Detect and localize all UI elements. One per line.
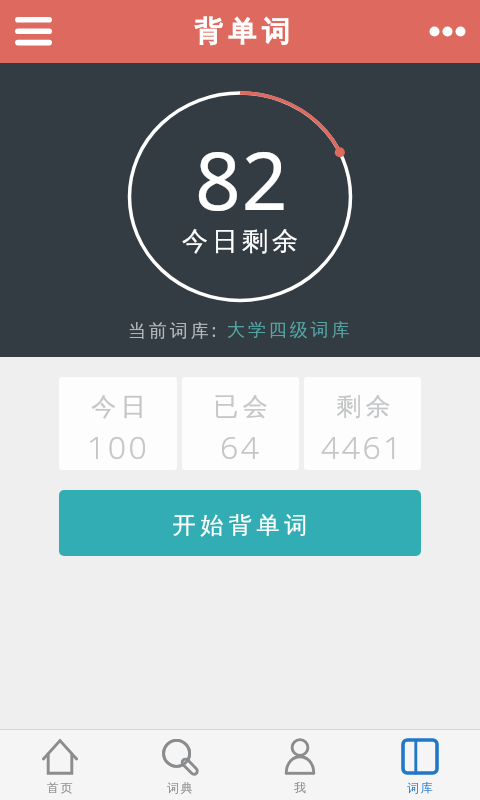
staticText: 已会 bbox=[211, 391, 270, 422]
staticText: 今日剩余 bbox=[180, 225, 300, 258]
button[interactable]: 开始背单词 bbox=[59, 490, 421, 556]
staticText: 剩余 bbox=[334, 391, 393, 422]
staticText: 词典 bbox=[167, 780, 195, 795]
button[interactable]: 今日 bbox=[59, 377, 177, 470]
button[interactable]: Menu bbox=[0, 0, 66, 63]
button[interactable]: 词典 bbox=[120, 730, 240, 800]
staticText: 82 bbox=[195, 124, 289, 233]
button[interactable]: 首页 bbox=[0, 730, 120, 800]
button[interactable]: 剩余 bbox=[304, 377, 421, 470]
button[interactable]: More options bbox=[410, 0, 480, 63]
button[interactable]: 我 bbox=[240, 730, 360, 800]
button[interactable]: 词库 bbox=[360, 730, 480, 800]
staticText: 4461 bbox=[321, 425, 405, 469]
staticText: 大学四级词库 bbox=[227, 319, 353, 342]
staticText: 100 bbox=[87, 425, 150, 469]
staticText: 我 bbox=[294, 780, 308, 795]
staticText: 64 bbox=[220, 425, 262, 469]
staticText: 当前词库: bbox=[128, 318, 227, 343]
staticText: 背单词 bbox=[191, 14, 293, 49]
staticText: 今日 bbox=[89, 391, 148, 422]
button[interactable]: 已会 bbox=[182, 377, 299, 470]
staticText: 词库 bbox=[407, 780, 435, 795]
staticText: 首页 bbox=[47, 780, 75, 795]
staticText: 开始背单词 bbox=[170, 511, 310, 540]
